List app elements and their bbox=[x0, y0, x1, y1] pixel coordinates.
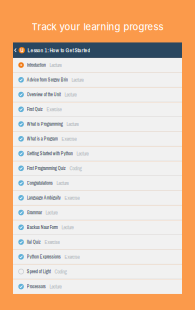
button[interactable]: Grammar bbox=[13, 205, 182, 220]
staticText: Lecture bbox=[66, 121, 78, 128]
button[interactable]: Language Ambiguity bbox=[13, 191, 182, 205]
staticText: Lecture bbox=[49, 62, 61, 69]
staticText: Grammar bbox=[27, 209, 42, 216]
staticText: u bbox=[20, 47, 23, 54]
staticText: Exercise bbox=[64, 194, 79, 201]
staticText: Overview of the Unit bbox=[27, 91, 61, 98]
staticText: Language Ambiguity bbox=[27, 195, 61, 201]
staticText: Exercise bbox=[44, 239, 59, 246]
staticText: Lesson 1: How to Get Started bbox=[27, 46, 90, 54]
staticText: Processors bbox=[27, 283, 46, 290]
staticText: First Quiz bbox=[27, 106, 43, 112]
staticText: Coding bbox=[54, 268, 66, 275]
staticText: Getting Started with Python bbox=[27, 150, 73, 157]
button[interactable]: Congratulations bbox=[13, 176, 182, 191]
staticText: Lecture bbox=[76, 150, 88, 157]
staticText: Backus Naur Form bbox=[27, 224, 58, 230]
staticText: Speed of Light bbox=[27, 268, 51, 275]
button[interactable]: What is a Program bbox=[13, 132, 182, 146]
button[interactable]: Backus Naur Form bbox=[13, 220, 182, 235]
staticText: Lecture bbox=[64, 91, 76, 98]
staticText: Exercise bbox=[46, 106, 61, 113]
staticText: What is Programming bbox=[27, 121, 63, 127]
button[interactable]: First Quiz bbox=[13, 102, 182, 117]
staticText: Lecture bbox=[71, 76, 83, 83]
staticText: Lecture bbox=[49, 283, 61, 290]
staticText: First Programming Quiz bbox=[27, 165, 66, 171]
staticText: Introduction bbox=[27, 62, 46, 68]
button[interactable]: First Programming Quiz bbox=[13, 161, 182, 176]
button[interactable]: Getting Started with Python bbox=[13, 146, 182, 161]
button[interactable]: Introduction bbox=[13, 58, 182, 73]
button[interactable]: What is Programming bbox=[13, 117, 182, 132]
staticText: What is a Program bbox=[27, 136, 58, 142]
button[interactable]: Ital Quiz bbox=[13, 235, 182, 250]
button[interactable]: Speed of Light bbox=[13, 264, 182, 279]
button[interactable]: Back bbox=[13, 42, 19, 58]
button[interactable]: Advice from Sergey Brin bbox=[13, 73, 182, 87]
button[interactable]: Overview of the Unit bbox=[13, 87, 182, 102]
staticText: Exercise bbox=[61, 135, 76, 142]
staticText: Track your learning progress bbox=[31, 21, 163, 32]
staticText: Ital Quiz bbox=[27, 239, 41, 245]
staticText: Lecture bbox=[61, 224, 73, 231]
button[interactable]: Python Expressions bbox=[13, 250, 182, 264]
staticText: Coding bbox=[69, 165, 81, 172]
staticText: Lecture bbox=[56, 180, 68, 187]
staticText: Exercise bbox=[64, 253, 79, 260]
button[interactable]: Processors bbox=[13, 279, 182, 294]
staticText: Lecture bbox=[45, 209, 57, 216]
staticText: Advice from Sergey Brin bbox=[27, 77, 68, 83]
staticText: Python Expressions bbox=[27, 254, 61, 260]
staticText: Congratulations bbox=[27, 180, 53, 186]
